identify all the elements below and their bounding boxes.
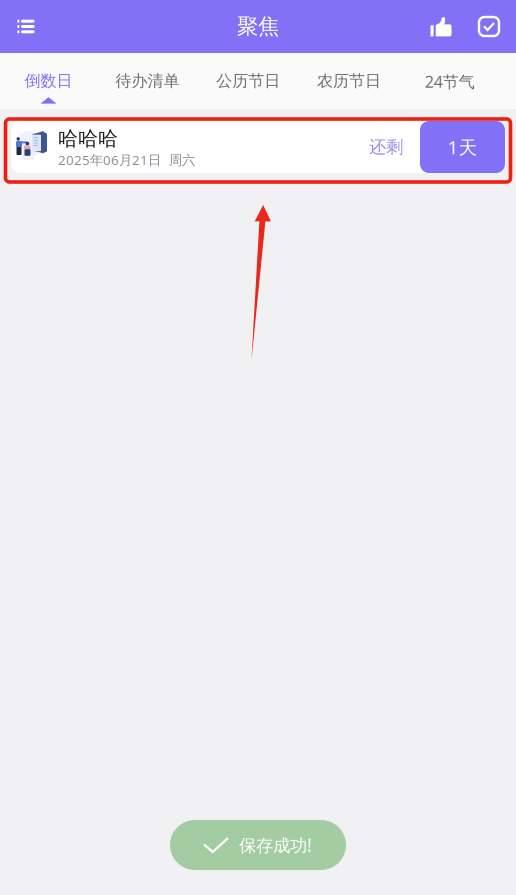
staticText: 公历节日	[216, 71, 280, 91]
button[interactable]: Completed	[462, 0, 516, 53]
staticText: 2025年06月21日 周六	[58, 151, 195, 169]
staticText: 倒数日	[24, 71, 72, 91]
button[interactable]: 哈哈哈	[11, 121, 505, 173]
button[interactable]: Menu	[0, 0, 52, 53]
button[interactable]: Like	[412, 0, 462, 53]
button[interactable]: 待办清单	[97, 53, 198, 109]
button[interactable]: 倒数日	[0, 53, 97, 109]
staticText: 农历节日	[317, 71, 381, 91]
staticText: 哈哈哈	[58, 126, 118, 151]
button[interactable]: 24节气	[399, 53, 500, 109]
staticText: 24节气	[425, 71, 475, 92]
staticText: 还剩	[369, 136, 403, 158]
staticText: 待办清单	[115, 71, 179, 91]
staticText: 保存成功!	[239, 833, 312, 856]
button[interactable]: 农历节日	[299, 53, 399, 109]
button[interactable]: 公历节日	[198, 53, 299, 109]
staticText: 聚焦	[237, 13, 279, 40]
staticText: 1天	[447, 135, 477, 159]
